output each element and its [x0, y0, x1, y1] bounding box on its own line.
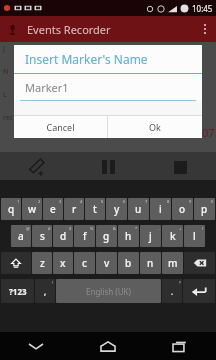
- button[interactable]: c: [74, 252, 95, 274]
- staticText: ?: [179, 280, 181, 285]
- button[interactable]: a: [11, 225, 31, 247]
- button[interactable]: Marker1: [25, 74, 202, 100]
- button[interactable]: Pause: [72, 152, 144, 182]
- staticText: .: [171, 286, 174, 297]
- staticText: c: [82, 256, 87, 270]
- staticText: Ok: [149, 121, 161, 133]
- staticText: !: [52, 280, 54, 285]
- staticText: @: [26, 226, 30, 231]
- button[interactable]: Add marker: [0, 152, 72, 182]
- staticText: &: [113, 226, 116, 231]
- staticText: 4: [80, 199, 83, 204]
- staticText: g: [103, 229, 110, 243]
- staticText: 7: [145, 199, 148, 204]
- staticText: v: [104, 256, 110, 270]
- button[interactable]: Enter: [183, 279, 215, 303]
- staticText: ?123: [9, 286, 27, 297]
- staticText: 0: [211, 199, 214, 204]
- button[interactable]: ?123: [1, 279, 34, 303]
- staticText: $: [69, 226, 72, 231]
- button[interactable]: w: [22, 198, 42, 220]
- button[interactable]: g: [96, 225, 117, 247]
- staticText: q: [8, 202, 15, 216]
- button[interactable]: r: [64, 198, 84, 220]
- staticText: z: [40, 256, 45, 270]
- staticText: J: [3, 44, 5, 54]
- staticText: %: [90, 226, 94, 231]
- staticText: English (UK): [86, 286, 131, 297]
- staticText: 3: [59, 199, 62, 204]
- staticText: *: [135, 226, 138, 231]
- button[interactable]: d: [53, 225, 73, 247]
- button[interactable]: b: [118, 252, 139, 274]
- staticText: x: [60, 256, 66, 270]
- button[interactable]: x: [53, 252, 73, 274]
- button[interactable]: Ok: [108, 116, 202, 138]
- button[interactable]: u: [128, 198, 149, 220]
- staticText: k: [170, 229, 176, 243]
- button[interactable]: s: [32, 225, 52, 247]
- button[interactable]: Shift: [1, 252, 31, 274]
- button[interactable]: Stop: [144, 152, 216, 182]
- staticText: ,: [44, 286, 47, 297]
- staticText: o: [179, 202, 186, 216]
- button[interactable]: i: [150, 198, 171, 220]
- staticText: Cancel: [46, 121, 75, 133]
- staticText: u: [135, 202, 142, 216]
- button[interactable]: m: [162, 252, 183, 274]
- button[interactable]: y: [106, 198, 127, 220]
- staticText: m: [168, 256, 178, 270]
- button[interactable]: t: [85, 198, 105, 220]
- button[interactable]: q: [1, 198, 21, 220]
- button[interactable]: Space: [56, 279, 161, 303]
- button[interactable]: p: [194, 198, 215, 220]
- staticText: e: [50, 202, 56, 216]
- button[interactable]: k: [162, 225, 183, 247]
- button[interactable]: e: [43, 198, 63, 220]
- staticText: i: [159, 202, 162, 216]
- staticText: #: [48, 226, 51, 231]
- staticText: j: [149, 229, 152, 243]
- button[interactable]: v: [96, 252, 117, 274]
- staticText: rec: [3, 113, 14, 123]
- staticText: b: [125, 256, 132, 270]
- staticText: 1: [17, 199, 20, 204]
- button[interactable]: f: [74, 225, 95, 247]
- staticText: l: [193, 229, 196, 243]
- staticText: N: [3, 67, 9, 77]
- button[interactable]: n: [140, 252, 161, 274]
- button[interactable]: Backspace: [184, 252, 215, 274]
- staticText: L: [3, 90, 7, 100]
- button[interactable]: More options: [194, 16, 216, 42]
- button[interactable]: h: [118, 225, 139, 247]
- staticText: (: [202, 226, 204, 231]
- staticText: f: [83, 229, 87, 243]
- button[interactable]: j: [140, 225, 161, 247]
- button[interactable]: o: [172, 198, 193, 220]
- staticText: s: [40, 229, 45, 243]
- staticText: 2: [38, 199, 41, 204]
- button[interactable]: Recent apps: [144, 332, 216, 360]
- staticText: Marker1: [25, 80, 69, 95]
- button[interactable]: ,: [35, 279, 55, 303]
- button[interactable]: l: [184, 225, 205, 247]
- staticText: w: [28, 202, 37, 216]
- staticText: +: [179, 226, 182, 231]
- staticText: 07: [202, 125, 215, 140]
- staticText: n: [147, 256, 154, 270]
- button[interactable]: Cancel: [14, 116, 107, 138]
- staticText: a: [18, 229, 24, 243]
- button[interactable]: z: [32, 252, 52, 274]
- staticText: 8: [167, 199, 170, 204]
- staticText: 10:45: [192, 3, 213, 14]
- staticText: Insert Marker's Name: [25, 51, 148, 67]
- staticText: d: [60, 229, 67, 243]
- button[interactable]: Home: [72, 332, 144, 360]
- staticText: p: [201, 202, 208, 216]
- button[interactable]: .: [162, 279, 182, 303]
- button[interactable]: Back: [0, 332, 72, 360]
- staticText: -: [158, 226, 160, 231]
- staticText: 9: [189, 199, 192, 204]
- staticText: Events Recorder: [27, 22, 111, 37]
- staticText: 6: [123, 199, 126, 204]
